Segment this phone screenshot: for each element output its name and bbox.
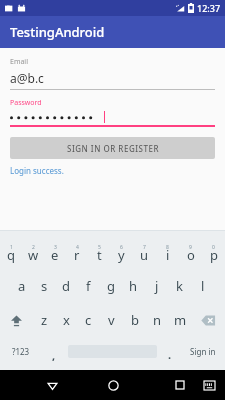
- staticText: 6: [120, 244, 123, 251]
- button[interactable]: Sign in: [181, 338, 225, 364]
- staticText: 3: [54, 244, 57, 251]
- staticText: f: [86, 277, 91, 295]
- staticText: c: [85, 311, 92, 329]
- staticText: u: [140, 246, 149, 264]
- button[interactable]: b: [123, 306, 146, 334]
- staticText: a: [18, 277, 26, 295]
- button[interactable]: s: [33, 272, 55, 300]
- staticText: SIGN IN OR REGISTER: [67, 143, 159, 154]
- staticText: Sign in: [190, 346, 216, 357]
- button[interactable]: Back: [37, 370, 67, 400]
- staticText: 2: [32, 244, 35, 251]
- button[interactable]: l: [191, 272, 214, 300]
- staticText: 9: [189, 244, 192, 251]
- button[interactable]: v: [100, 306, 123, 334]
- button[interactable]: z: [33, 306, 55, 334]
- staticText: d: [62, 277, 70, 295]
- staticText: h: [129, 277, 138, 295]
- button[interactable]: a: [11, 272, 33, 300]
- staticText: Login success.: [10, 165, 64, 176]
- button[interactable]: SIGN IN OR REGISTER: [10, 137, 215, 159]
- button[interactable]: g: [99, 272, 122, 300]
- staticText: .: [168, 347, 172, 362]
- staticText: q: [7, 246, 15, 264]
- staticText: 7: [143, 244, 146, 251]
- button[interactable]: 3: [44, 238, 66, 266]
- staticText: 1: [10, 244, 13, 251]
- button[interactable]: 4: [66, 238, 88, 266]
- button[interactable]: h: [122, 272, 145, 300]
- staticText: Password: [10, 98, 42, 108]
- staticText: r: [74, 246, 80, 264]
- button[interactable]: 6: [110, 238, 133, 266]
- button[interactable]: 9: [179, 238, 202, 266]
- staticText: j: [155, 277, 159, 295]
- button[interactable]: d: [55, 272, 77, 300]
- staticText: ,: [52, 348, 56, 363]
- staticText: w: [28, 246, 39, 264]
- button[interactable]: Comma: [42, 338, 66, 364]
- staticText: x: [63, 311, 70, 329]
- button[interactable]: x: [55, 306, 77, 334]
- button[interactable]: Backspace: [192, 306, 225, 334]
- button[interactable]: k: [168, 272, 191, 300]
- button[interactable]: m: [169, 306, 192, 334]
- button[interactable]: Period: [159, 338, 181, 364]
- button[interactable]: f: [77, 272, 99, 300]
- staticText: 0: [212, 244, 215, 251]
- staticText: l: [201, 277, 205, 295]
- button[interactable]: 5: [88, 238, 110, 266]
- staticText: i: [166, 246, 170, 264]
- button[interactable]: Home: [98, 370, 128, 400]
- button[interactable]: c: [77, 306, 100, 334]
- button[interactable]: 7: [133, 238, 156, 266]
- button[interactable]: 2: [22, 238, 44, 266]
- button[interactable]: 8: [156, 238, 179, 266]
- staticText: y: [118, 246, 125, 264]
- button[interactable]: Switch keyboard: [196, 372, 222, 398]
- button[interactable]: n: [146, 306, 169, 334]
- staticText: a@b.c: [10, 70, 44, 86]
- staticText: z: [41, 311, 48, 329]
- staticText: p: [210, 246, 218, 264]
- staticText: o: [187, 246, 195, 264]
- staticText: TestingAndroid: [10, 23, 105, 41]
- staticText: m: [174, 311, 187, 329]
- staticText: v: [108, 311, 115, 329]
- button[interactable]: 0: [202, 238, 225, 266]
- staticText: 12:37: [197, 2, 221, 14]
- staticText: 5: [98, 244, 101, 251]
- staticText: ?123: [12, 346, 30, 357]
- button[interactable]: Shift: [0, 306, 33, 334]
- staticText: e: [51, 246, 59, 264]
- staticText: k: [176, 277, 183, 295]
- staticText: 8: [166, 244, 169, 251]
- button[interactable]: Password: [10, 98, 215, 127]
- button[interactable]: 1: [0, 238, 22, 266]
- staticText: t: [97, 246, 102, 264]
- button[interactable]: Recent apps: [165, 370, 195, 400]
- staticText: b: [131, 311, 139, 329]
- staticText: 4: [76, 244, 79, 251]
- button[interactable]: j: [145, 272, 168, 300]
- staticText: n: [153, 311, 162, 329]
- button[interactable]: Email: [10, 57, 215, 90]
- button[interactable]: ?123: [0, 338, 42, 364]
- staticText: Email: [10, 57, 28, 67]
- staticText: g: [107, 277, 115, 295]
- staticText: s: [41, 277, 48, 295]
- button[interactable]: Space: [68, 338, 157, 364]
